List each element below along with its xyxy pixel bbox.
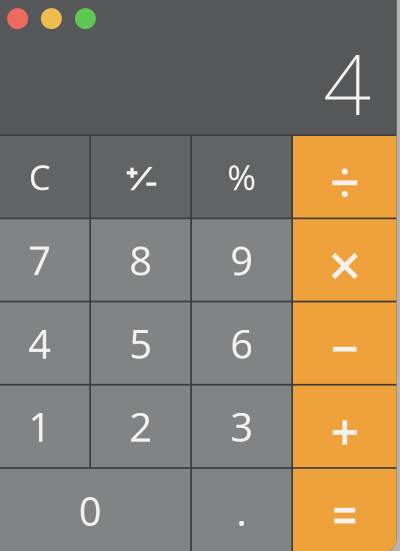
staticText: %	[227, 154, 256, 200]
staticText: 1	[28, 400, 51, 453]
button[interactable]: Minimize	[41, 8, 62, 29]
staticText: 4	[323, 27, 371, 139]
button[interactable]: .	[192, 469, 291, 551]
staticText: 3	[230, 400, 253, 453]
staticText: 5	[129, 317, 152, 370]
button[interactable]: 8	[91, 219, 190, 301]
button[interactable]: 7	[0, 219, 89, 301]
button[interactable]: Plus minus	[91, 136, 190, 217]
button[interactable]: Percent	[192, 136, 291, 217]
staticText: .	[236, 484, 247, 537]
staticText: 2	[129, 400, 152, 453]
staticText: 6	[230, 317, 253, 370]
staticText: 8	[129, 233, 152, 286]
button[interactable]: Divide	[293, 136, 396, 217]
button[interactable]: 5	[91, 302, 190, 384]
button[interactable]: Clear	[0, 136, 89, 217]
button[interactable]: 9	[192, 219, 291, 301]
button[interactable]: 3	[192, 386, 291, 467]
staticText: 4	[28, 317, 51, 370]
staticText: C	[29, 154, 51, 200]
staticText: 9	[230, 233, 253, 286]
button[interactable]: 6	[192, 302, 291, 384]
staticText: 7	[28, 233, 51, 286]
staticText: 0	[79, 484, 102, 537]
button[interactable]: 2	[91, 386, 190, 467]
button[interactable]: Zoom	[75, 8, 96, 29]
button[interactable]: 4	[0, 302, 89, 384]
button[interactable]: 1	[0, 386, 89, 467]
button[interactable]: Multiply	[293, 219, 396, 301]
button[interactable]: 0	[0, 469, 190, 551]
button[interactable]: Close	[7, 8, 28, 29]
button[interactable]: Equals	[293, 469, 396, 551]
button[interactable]: Subtract	[293, 302, 396, 384]
button[interactable]: Add	[293, 386, 396, 467]
